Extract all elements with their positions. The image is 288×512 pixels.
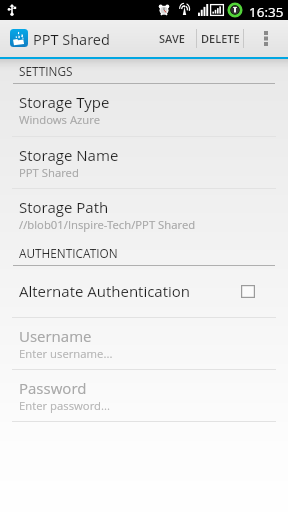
- staticText: DELETE: [201, 31, 240, 46]
- staticText: Windows Azure: [19, 112, 100, 127]
- staticText: Storage Type: [19, 92, 110, 112]
- staticText: Password: [19, 378, 87, 398]
- button[interactable]: Storage Name: [0, 136, 288, 188]
- staticText: Username: [19, 326, 92, 346]
- button[interactable]: Username: [0, 317, 288, 369]
- staticText: Enter username...: [19, 346, 113, 361]
- button[interactable]: Storage Type: [0, 83, 288, 136]
- staticText: SAVE: [159, 31, 185, 46]
- staticText: Alternate Authentication: [19, 281, 191, 301]
- button[interactable]: SAVE: [148, 20, 196, 57]
- staticText: Enter password...: [19, 398, 111, 413]
- staticText: AUTHENTICATION: [19, 245, 118, 261]
- staticText: PPT Shared: [19, 165, 79, 180]
- staticText: SETTINGS: [19, 63, 73, 79]
- button[interactable]: DELETE: [197, 20, 243, 57]
- button[interactable]: Password: [0, 369, 288, 421]
- button[interactable]: Storage Path: [0, 188, 288, 240]
- button[interactable]: More options: [244, 20, 288, 57]
- staticText: //blob01/Inspire-Tech/PPT Shared: [19, 217, 196, 232]
- staticText: Storage Name: [19, 145, 119, 165]
- button[interactable]: PPT Shared: [0, 20, 120, 57]
- staticText: PPT Shared: [33, 30, 110, 50]
- button[interactable]: Alternate Authentication: [0, 265, 288, 317]
- staticText: 16:35: [249, 3, 284, 21]
- staticText: Storage Path: [19, 197, 109, 217]
